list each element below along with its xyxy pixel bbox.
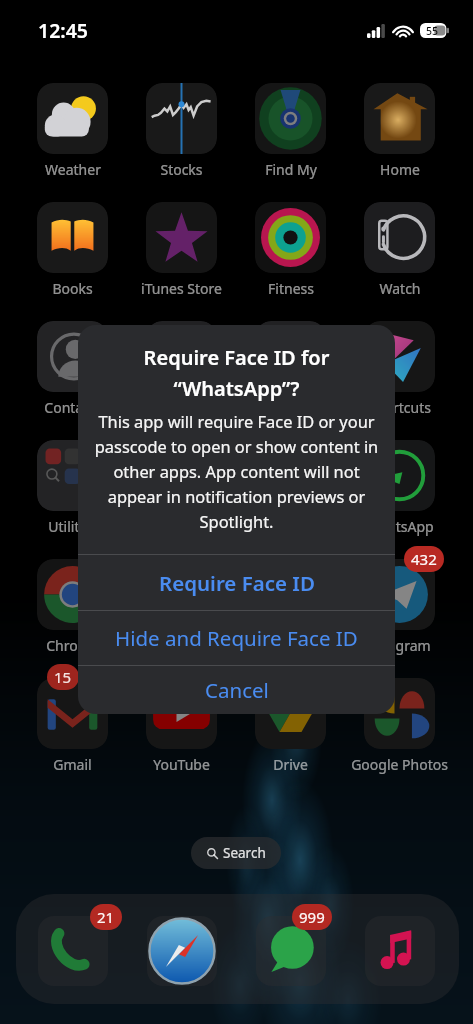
button[interactable]: Wallet xyxy=(236,436,345,541)
staticText: Telegram xyxy=(369,636,431,655)
button[interactable]: Require Face ID xyxy=(78,555,395,610)
staticText: 15 xyxy=(54,667,72,687)
button[interactable]: Shortcuts xyxy=(345,317,454,422)
staticText: 432 xyxy=(411,549,437,569)
button[interactable]: Chrome xyxy=(18,555,127,660)
staticText: Wallet xyxy=(270,517,311,536)
staticText: Books xyxy=(52,279,93,298)
button[interactable]: Safari xyxy=(147,916,217,986)
button[interactable]: Tips xyxy=(127,317,236,422)
button[interactable]: Translate xyxy=(236,317,345,422)
staticText: Health xyxy=(160,517,204,536)
staticText: Maps xyxy=(164,636,200,655)
staticText: Google Photos xyxy=(351,755,448,774)
staticText: 999 xyxy=(299,907,325,927)
button[interactable]: Gmail xyxy=(18,674,127,779)
staticText: Shortcuts xyxy=(368,398,431,417)
staticText: 12:45 xyxy=(38,17,88,44)
staticText: Tips xyxy=(168,398,195,417)
staticText: Translate xyxy=(260,398,321,417)
staticText: Chrome xyxy=(46,636,99,655)
staticText: Home xyxy=(380,160,420,179)
button[interactable]: WhatsApp xyxy=(345,436,454,541)
staticText: This app will require Face ID or your pa… xyxy=(91,410,382,533)
button[interactable]: Maps xyxy=(127,555,236,660)
staticText: Gmail xyxy=(53,755,92,774)
staticText: Hide and Require Face ID xyxy=(115,624,358,652)
staticText: Cancel xyxy=(205,676,269,704)
button[interactable]: Weather xyxy=(18,79,127,184)
button[interactable]: Home xyxy=(345,79,454,184)
button[interactable]: Find My xyxy=(236,79,345,184)
button[interactable]: iTunes Store xyxy=(127,198,236,303)
button[interactable]: Cancel xyxy=(78,666,395,714)
staticText: Contacts xyxy=(44,398,102,417)
button[interactable]: Books xyxy=(18,198,127,303)
button[interactable]: Drive xyxy=(236,674,345,779)
button[interactable]: Messages xyxy=(256,916,326,986)
staticText: Search xyxy=(223,844,266,862)
button[interactable]: Hide and Require Face ID xyxy=(78,611,395,665)
staticText: WhatsApp xyxy=(366,517,434,536)
button[interactable]: Meet xyxy=(236,555,345,660)
staticText: Require Face ID xyxy=(159,569,315,597)
staticText: Require Face ID for “WhatsApp”? xyxy=(94,344,379,402)
staticText: YouTube xyxy=(153,755,210,774)
button[interactable]: Music xyxy=(365,916,435,986)
button[interactable]: Stocks xyxy=(127,79,236,184)
staticText: Find My xyxy=(265,160,317,179)
staticText: Utilities xyxy=(48,517,98,536)
staticText: Watch xyxy=(379,279,421,298)
button[interactable]: Search xyxy=(191,837,281,869)
button[interactable]: Watch xyxy=(345,198,454,303)
button[interactable]: Health xyxy=(127,436,236,541)
button[interactable]: Utilities xyxy=(18,436,127,541)
staticText: 21 xyxy=(97,907,115,927)
button[interactable]: Phone xyxy=(38,916,108,986)
button[interactable]: Contacts xyxy=(18,317,127,422)
staticText: Meet xyxy=(274,636,308,655)
button[interactable]: Telegram xyxy=(345,555,454,660)
button[interactable]: Fitness xyxy=(236,198,345,303)
staticText: Fitness xyxy=(268,279,314,298)
staticText: Stocks xyxy=(160,160,203,179)
button[interactable]: Google Photos xyxy=(345,674,454,779)
staticText: iTunes Store xyxy=(141,279,222,298)
staticText: 55 xyxy=(426,24,439,38)
button[interactable]: YouTube xyxy=(127,674,236,779)
staticText: Drive xyxy=(273,755,308,774)
staticText: Weather xyxy=(45,160,101,179)
